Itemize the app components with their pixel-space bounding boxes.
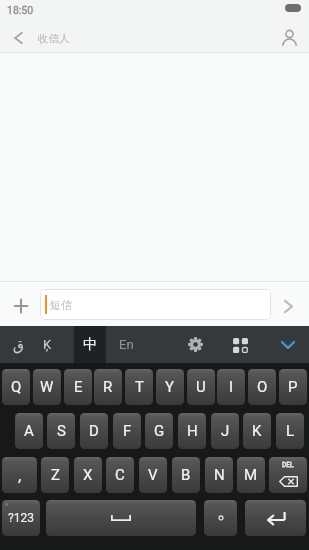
button[interactable]: [274, 292, 302, 320]
staticText: Z: [51, 466, 60, 484]
button[interactable]: U: [187, 369, 215, 405]
button[interactable]: Q: [2, 369, 30, 405]
staticText: ,: [18, 466, 22, 485]
button[interactable]: K: [243, 413, 271, 449]
staticText: 收信人: [38, 32, 70, 45]
staticText: Ķ: [43, 337, 52, 352]
button[interactable]: T: [125, 369, 153, 405]
button[interactable]: Z: [41, 457, 69, 493]
staticText: U: [196, 378, 206, 396]
staticText: K: [252, 422, 262, 440]
button[interactable]: I: [217, 369, 245, 405]
button[interactable]: En: [110, 326, 142, 363]
staticText: L: [286, 422, 295, 440]
button[interactable]: F: [113, 413, 141, 449]
staticText: V: [148, 466, 158, 484]
staticText: W: [40, 378, 54, 396]
button[interactable]: O: [248, 369, 276, 405]
staticText: N: [214, 466, 225, 484]
staticText: J: [221, 422, 230, 440]
button[interactable]: A: [15, 413, 43, 449]
staticText: 18:50: [7, 4, 34, 16]
staticText: I: [229, 378, 234, 396]
button[interactable]: Ķ: [32, 326, 62, 363]
staticText: Q: [11, 378, 22, 396]
button[interactable]: [8, 293, 34, 319]
button[interactable]: C: [106, 457, 134, 493]
button[interactable]: 中: [74, 326, 106, 363]
button[interactable]: J: [211, 413, 239, 449]
button[interactable]: X: [74, 457, 102, 493]
button[interactable]: D: [80, 413, 108, 449]
button[interactable]: [204, 500, 237, 536]
button[interactable]: ,: [2, 457, 37, 493]
staticText: 短信: [50, 298, 72, 312]
staticText: ق: [13, 337, 24, 353]
staticText: C: [115, 466, 125, 484]
staticText: A: [24, 422, 34, 440]
button[interactable]: V: [139, 457, 167, 493]
staticText: T: [135, 378, 144, 396]
button[interactable]: [225, 326, 255, 363]
staticText: E: [74, 378, 83, 396]
button[interactable]: L: [276, 413, 304, 449]
button[interactable]: M: [237, 457, 265, 493]
staticText: ?123: [8, 511, 34, 525]
button[interactable]: P: [279, 369, 307, 405]
button[interactable]: G: [145, 413, 173, 449]
button[interactable]: S: [47, 413, 75, 449]
staticText: Y: [165, 378, 175, 396]
staticText: H: [187, 422, 198, 440]
button[interactable]: E: [64, 369, 92, 405]
button[interactable]: H: [178, 413, 206, 449]
button[interactable]: [180, 326, 210, 363]
button[interactable]: ق: [3, 326, 33, 363]
staticText: F: [123, 422, 132, 440]
staticText: G: [154, 422, 165, 440]
staticText: M: [244, 466, 258, 484]
staticText: DEL: [282, 461, 294, 469]
staticText: S: [57, 422, 66, 440]
button[interactable]: Y: [156, 369, 184, 405]
button[interactable]: [46, 500, 196, 536]
button[interactable]: R: [94, 369, 122, 405]
button[interactable]: ?123: [2, 500, 40, 536]
staticText: En: [119, 337, 134, 352]
button[interactable]: N: [205, 457, 233, 493]
staticText: D: [89, 422, 99, 440]
button[interactable]: [7, 27, 29, 49]
staticText: B: [181, 466, 191, 484]
staticText: X: [83, 466, 93, 484]
button[interactable]: DEL: [269, 457, 307, 493]
button[interactable]: 短信: [40, 289, 271, 320]
button[interactable]: [245, 500, 306, 536]
staticText: O: [257, 378, 268, 396]
button[interactable]: W: [33, 369, 61, 405]
button[interactable]: B: [172, 457, 200, 493]
staticText: R: [103, 378, 113, 396]
button[interactable]: [272, 326, 304, 363]
staticText: P: [288, 378, 298, 396]
staticText: 中: [83, 336, 97, 354]
button[interactable]: [277, 26, 301, 50]
